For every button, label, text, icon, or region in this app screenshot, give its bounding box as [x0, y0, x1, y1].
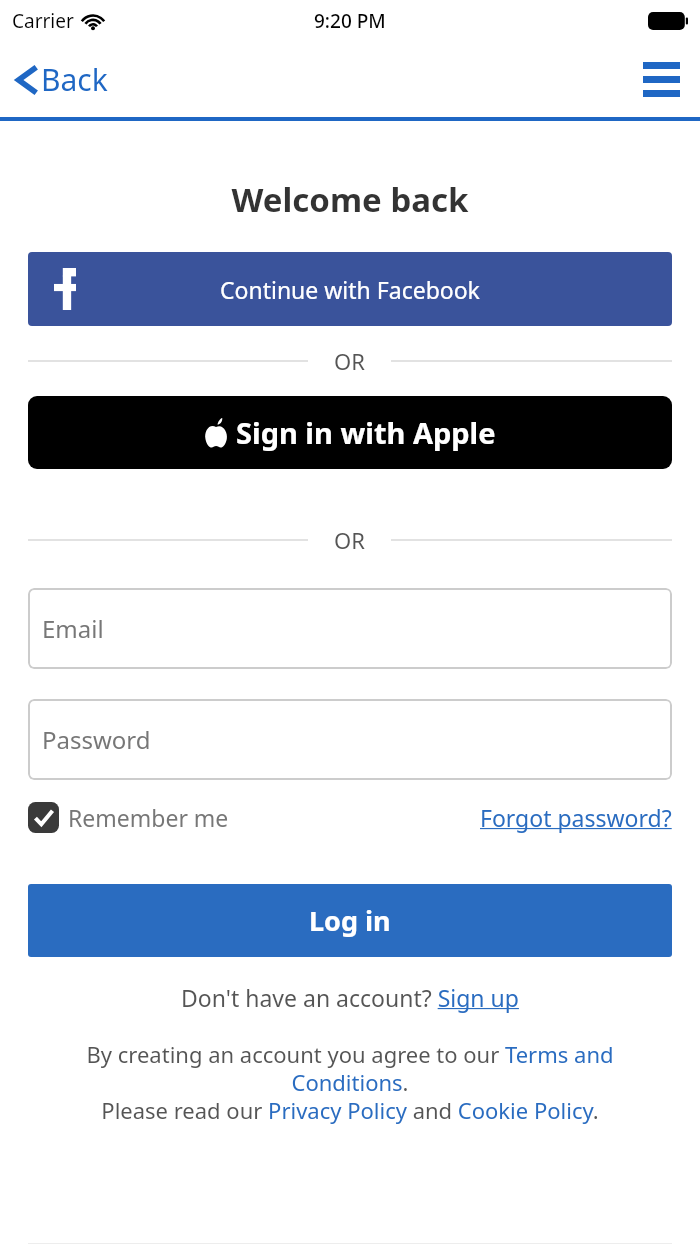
- staticText: By creating an account you agree to our …: [28, 1039, 672, 1125]
- button[interactable]: Menu: [623, 50, 700, 109]
- button[interactable]: Continue with Facebook: [28, 252, 672, 326]
- staticText: Remember me: [68, 802, 229, 833]
- button[interactable]: Password: [28, 699, 672, 780]
- staticText: Password: [42, 723, 151, 756]
- staticText: Carrier: [12, 8, 74, 34]
- staticText: Don't have an account? Sign up: [181, 982, 519, 1013]
- staticText: Continue with Facebook: [220, 274, 480, 305]
- button[interactable]: Log in: [28, 884, 672, 957]
- staticText: 9:20 PM: [314, 8, 386, 34]
- staticText: Sign in with Apple: [236, 413, 496, 452]
- staticText: Log in: [309, 902, 391, 939]
- staticText: OR: [334, 346, 365, 376]
- button[interactable]: Sign in with Apple: [28, 396, 672, 469]
- staticText: Email: [42, 612, 104, 645]
- button[interactable]: Back: [0, 53, 120, 106]
- button[interactable]: Remember me: [28, 802, 229, 833]
- staticText: OR: [334, 525, 365, 555]
- button[interactable]: Forgot password?: [480, 802, 672, 833]
- staticText: Welcome back: [28, 177, 672, 222]
- button[interactable]: Email: [28, 588, 672, 669]
- button[interactable]: Don't have an account? Sign up: [28, 982, 672, 1013]
- staticText: Forgot password?: [480, 802, 672, 833]
- staticText: Back: [41, 59, 108, 100]
